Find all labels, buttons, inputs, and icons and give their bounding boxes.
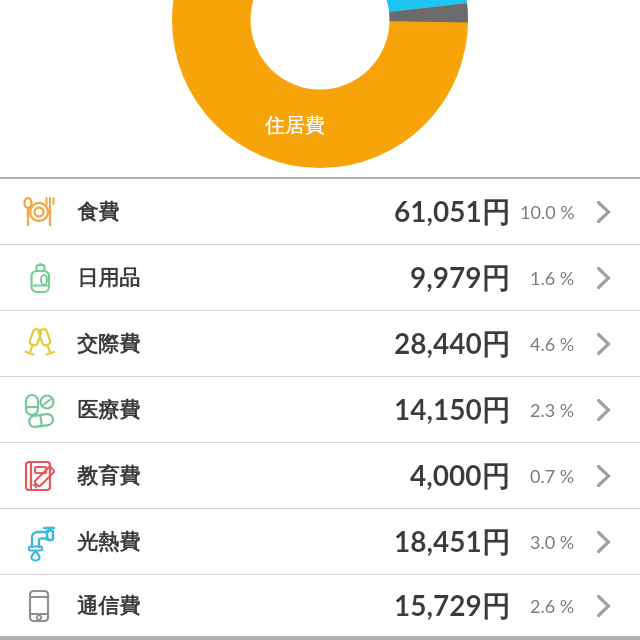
- staticText: 4,000円: [410, 458, 510, 494]
- button[interactable]: 教育費: [0, 443, 640, 508]
- button[interactable]: 通信費: [0, 575, 640, 636]
- staticText: 0.7 %: [530, 465, 575, 487]
- staticText: 28,440円: [394, 326, 510, 362]
- staticText: 住居費: [265, 113, 325, 138]
- staticText: 交際費: [77, 331, 140, 357]
- staticText: 10.0 %: [520, 201, 575, 223]
- button[interactable]: 交際費: [0, 311, 640, 376]
- staticText: 日用品: [77, 265, 140, 291]
- staticText: 光熱費: [77, 529, 140, 555]
- staticText: 18,451円: [394, 524, 510, 560]
- staticText: 14,150円: [394, 392, 510, 428]
- staticText: 4.6 %: [530, 333, 575, 355]
- staticText: 1.6 %: [530, 267, 575, 289]
- button[interactable]: 日用品: [0, 245, 640, 310]
- staticText: 医療費: [77, 397, 140, 423]
- staticText: 15,729円: [394, 588, 510, 624]
- staticText: 9,979円: [410, 260, 510, 296]
- staticText: 2.3 %: [530, 399, 575, 421]
- staticText: 61,051円: [394, 194, 510, 230]
- staticText: 教育費: [77, 463, 140, 489]
- staticText: 3.0 %: [530, 531, 575, 553]
- staticText: 通信費: [77, 593, 140, 619]
- button[interactable]: 医療費: [0, 377, 640, 442]
- button[interactable]: 光熱費: [0, 509, 640, 574]
- staticText: 2.6 %: [530, 595, 575, 617]
- button[interactable]: 食費: [0, 179, 640, 244]
- staticText: 食費: [77, 199, 119, 225]
